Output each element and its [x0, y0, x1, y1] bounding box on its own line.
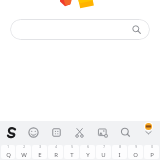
button[interactable]: 1	[1, 145, 15, 159]
staticText: O	[133, 151, 138, 159]
button[interactable]: Sticker suggestion	[144, 122, 153, 131]
button[interactable]: 5	[64, 145, 79, 159]
staticText: Y	[86, 151, 90, 159]
button[interactable]	[10, 19, 150, 40]
button[interactable]: 4	[48, 145, 63, 159]
staticText: I	[118, 151, 121, 159]
staticText: R	[54, 151, 58, 159]
staticText: 1	[7, 145, 9, 149]
button[interactable]: 6	[80, 145, 95, 159]
button[interactable]: 9	[128, 145, 143, 159]
button[interactable]: Stickers	[45, 121, 68, 144]
button[interactable]: More	[137, 121, 160, 144]
button[interactable]: 2	[16, 145, 31, 159]
staticText: P	[150, 151, 154, 159]
button[interactable]: Image search	[91, 121, 114, 144]
staticText: 8	[119, 145, 121, 149]
button[interactable]: 7	[96, 145, 111, 159]
staticText: 4	[55, 145, 57, 149]
staticText: E	[38, 151, 42, 159]
button[interactable]: Search	[114, 121, 137, 144]
staticText: 5	[71, 145, 73, 149]
button[interactable]: 8	[112, 145, 127, 159]
staticText: T	[70, 151, 74, 159]
staticText: Q	[6, 151, 11, 159]
staticText: W	[21, 151, 27, 159]
staticText: 6	[87, 145, 89, 149]
staticText: 2	[23, 145, 25, 149]
staticText: U	[101, 151, 106, 159]
staticText: 9	[135, 145, 137, 149]
button[interactable]: SwiftKey	[0, 121, 22, 144]
button[interactable]: Emoji	[22, 121, 45, 144]
staticText: 0	[151, 145, 153, 149]
staticText: 7	[103, 145, 105, 149]
button[interactable]: 3	[32, 145, 47, 159]
button[interactable]: Clipboard cut	[68, 121, 91, 144]
button[interactable]: 0	[144, 145, 159, 159]
staticText: 3	[39, 145, 41, 149]
